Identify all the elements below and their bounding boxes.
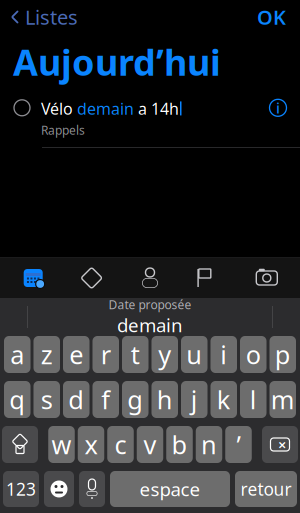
button[interactable]: ’ — [225, 426, 252, 463]
button[interactable]: OK — [257, 0, 300, 34]
button[interactable]: retour — [235, 471, 297, 507]
staticText: p — [275, 338, 291, 371]
staticText: ’ — [236, 428, 240, 461]
button[interactable]: Appareil photo — [255, 267, 279, 289]
staticText: d — [68, 383, 84, 416]
button[interactable]: v — [137, 426, 163, 463]
button[interactable]: Date — [20, 265, 46, 291]
staticText: Aujourd’hui — [13, 38, 221, 86]
button[interactable]: 123 — [3, 471, 39, 507]
button[interactable]: Drapeau — [197, 267, 219, 289]
button[interactable]: Emoji — [44, 471, 74, 507]
button[interactable]: Lieu — [81, 267, 103, 289]
staticText: w — [51, 428, 71, 461]
button[interactable]: u — [181, 336, 207, 373]
button[interactable]: e — [63, 336, 89, 373]
button[interactable]: t — [122, 336, 148, 373]
staticText: espace — [139, 477, 200, 501]
button[interactable]: d — [63, 381, 89, 418]
staticText: o — [246, 338, 261, 371]
staticText: demain — [77, 98, 134, 119]
staticText: demain — [117, 313, 183, 337]
staticText: x — [84, 428, 97, 461]
staticText: n — [201, 428, 217, 461]
staticText: a 14h — [134, 98, 179, 119]
button[interactable]: p — [269, 336, 296, 373]
staticText: Date proposée — [108, 297, 191, 312]
staticText: h — [157, 383, 173, 416]
staticText: Listes — [25, 4, 78, 30]
button[interactable]: w — [48, 426, 75, 463]
staticText: j — [191, 383, 198, 416]
staticText: a — [10, 338, 24, 371]
staticText: r — [101, 338, 111, 371]
staticText: y — [158, 338, 171, 371]
button[interactable]: a — [4, 336, 30, 373]
staticText: 123 — [6, 477, 36, 500]
staticText: g — [127, 383, 143, 416]
button[interactable]: o — [240, 336, 266, 373]
button[interactable]: Dictée — [79, 471, 105, 507]
staticText: OK — [257, 4, 286, 30]
staticText: m — [271, 383, 295, 416]
staticText: l — [250, 383, 257, 416]
staticText: z — [41, 338, 53, 371]
button[interactable]: espace — [110, 471, 230, 507]
staticText: i — [220, 338, 227, 371]
button[interactable]: h — [151, 381, 178, 418]
button[interactable]: Date proposée — [108, 297, 191, 337]
button[interactable]: k — [210, 381, 237, 418]
button[interactable]: f — [92, 381, 119, 418]
button[interactable]: q — [4, 381, 30, 418]
staticText: retour — [240, 477, 291, 500]
staticText: v — [143, 428, 156, 461]
button[interactable]: y — [151, 336, 178, 373]
button[interactable]: m — [269, 381, 296, 418]
button[interactable]: b — [166, 426, 193, 463]
staticText: t — [131, 338, 140, 371]
button[interactable]: n — [196, 426, 222, 463]
staticText: b — [171, 428, 187, 461]
staticText: e — [69, 338, 83, 371]
staticText: × — [278, 435, 286, 454]
staticText: q — [9, 383, 25, 416]
staticText: i — [276, 98, 280, 118]
button[interactable]: l — [240, 381, 266, 418]
button[interactable]: Majuscule — [2, 426, 38, 463]
button[interactable]: i — [210, 336, 237, 373]
button[interactable]: z — [33, 336, 60, 373]
button[interactable]: s — [33, 381, 60, 418]
button[interactable]: r — [92, 336, 119, 373]
button[interactable]: Personne — [139, 267, 161, 289]
button[interactable]: Listes — [0, 0, 78, 34]
staticText: f — [101, 383, 110, 416]
staticText: u — [186, 338, 202, 371]
button[interactable]: j — [181, 381, 207, 418]
button[interactable]: g — [122, 381, 148, 418]
staticText: Rappels — [41, 122, 85, 138]
button[interactable]: c — [107, 426, 134, 463]
staticText: k — [217, 383, 231, 416]
staticText: Vélo — [41, 98, 77, 119]
button[interactable]: Supprimer — [262, 426, 298, 463]
staticText: c — [114, 428, 126, 461]
button[interactable]: x — [78, 426, 104, 463]
button[interactable]: Détails — [268, 98, 300, 118]
staticText: s — [41, 383, 53, 416]
